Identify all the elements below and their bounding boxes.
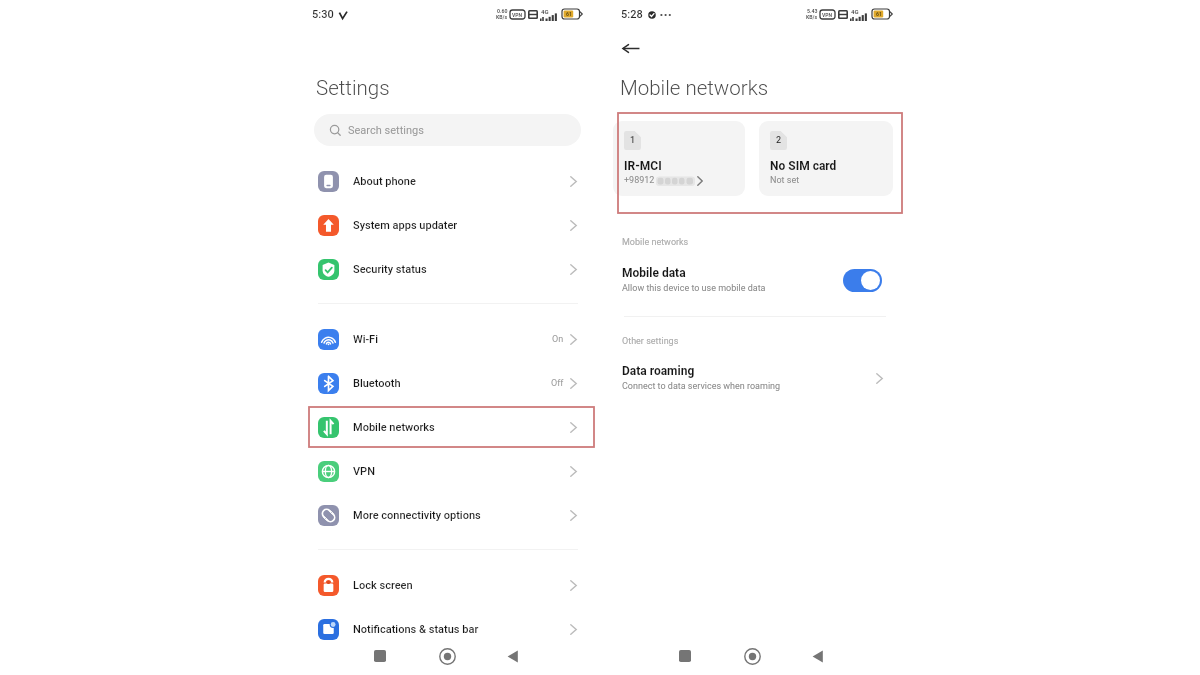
button[interactable]: Notifications & status bar — [306, 607, 594, 651]
staticText: +98912 — [624, 175, 655, 186]
staticText: KB/s — [806, 14, 818, 20]
staticText: 5:30 — [312, 8, 334, 21]
button[interactable]: 1 — [613, 121, 745, 196]
staticText: Allow this device to use mobile data — [622, 283, 766, 294]
staticText: 1 — [630, 135, 636, 146]
staticText: 61 — [566, 11, 572, 17]
staticText: System apps updater — [353, 219, 458, 232]
staticText: 4G — [851, 8, 859, 15]
staticText: Not set — [770, 175, 800, 186]
button[interactable]: Security status — [306, 247, 594, 291]
staticText: VPN — [512, 12, 523, 18]
button[interactable]: Search settings — [314, 114, 581, 146]
button[interactable]: Back — [501, 644, 525, 668]
staticText: 2 — [776, 135, 782, 146]
button[interactable]: Wi-Fi — [306, 317, 594, 361]
button[interactable]: Home — [740, 644, 764, 668]
staticText: 4G — [541, 8, 549, 15]
button[interactable]: Back — [618, 35, 644, 61]
staticText: No SIM card — [770, 159, 837, 173]
staticText: On — [552, 334, 564, 345]
staticText: Settings — [316, 76, 390, 100]
staticText: Mobile networks — [353, 421, 435, 434]
staticText: Notifications & status bar — [353, 623, 479, 636]
staticText: VPN — [353, 465, 375, 478]
staticText: Bluetooth — [353, 377, 401, 390]
button[interactable]: More connectivity options — [306, 493, 594, 537]
button[interactable]: About phone — [306, 159, 594, 203]
staticText: Mobile networks — [622, 237, 689, 248]
staticText: More connectivity options — [353, 509, 481, 522]
button[interactable]: VPN — [306, 449, 594, 493]
staticText: Search settings — [348, 124, 424, 137]
staticText: 61 — [876, 11, 882, 17]
button[interactable]: Recents — [673, 644, 697, 668]
staticText: VPN — [822, 12, 833, 18]
staticText: 5.43 — [807, 8, 818, 14]
button[interactable]: Home — [435, 644, 459, 668]
staticText: 0.60 — [497, 8, 508, 14]
button[interactable]: Bluetooth — [306, 361, 594, 405]
button[interactable]: Back — [806, 644, 830, 668]
staticText: Other settings — [622, 336, 679, 347]
button[interactable]: Recents — [368, 644, 392, 668]
staticText: Security status — [353, 263, 427, 276]
button[interactable]: 2 — [759, 121, 893, 196]
staticText: Lock screen — [353, 579, 413, 592]
button[interactable]: Mobile networks — [306, 405, 594, 449]
staticText: IR-MCI — [624, 159, 662, 173]
staticText: Wi-Fi — [353, 333, 378, 346]
button[interactable]: Data roaming — [615, 358, 904, 398]
staticText: Data roaming — [622, 364, 695, 378]
button[interactable]: System apps updater — [306, 203, 594, 247]
staticText: 5:28 — [621, 8, 643, 21]
staticText: Connect to data services when roaming — [622, 381, 781, 392]
staticText: Mobile networks — [620, 76, 769, 100]
staticText: Off — [551, 378, 564, 389]
button[interactable]: Mobile data — [615, 260, 904, 300]
staticText: KB/s — [496, 14, 508, 20]
staticText: About phone — [353, 175, 416, 188]
staticText: Mobile data — [622, 266, 686, 280]
button[interactable]: Lock screen — [306, 563, 594, 607]
